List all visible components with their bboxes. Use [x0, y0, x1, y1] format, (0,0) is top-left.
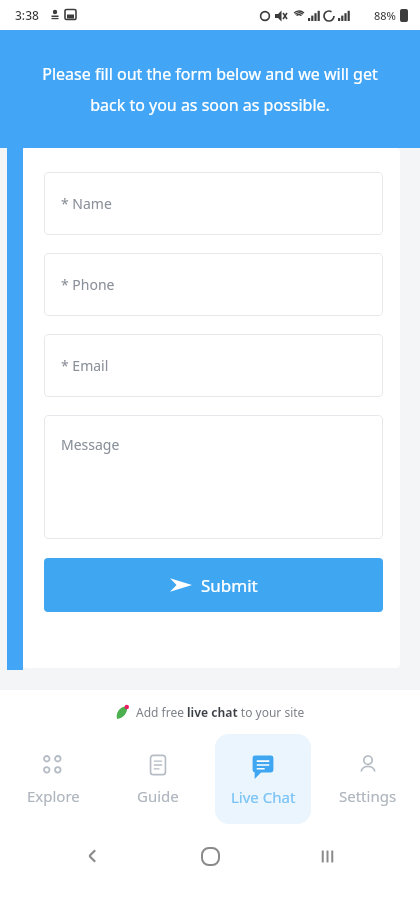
button[interactable]: Recent apps — [303, 832, 351, 880]
staticText: Guide — [137, 786, 179, 806]
staticText: Submit — [201, 574, 258, 597]
button[interactable]: * Phone — [44, 253, 383, 316]
staticText: Message — [61, 435, 120, 454]
button[interactable]: Submit — [44, 558, 383, 612]
button[interactable]: Live chat logo — [0, 690, 420, 734]
staticText: * Name — [61, 194, 112, 213]
staticText: * Email — [61, 356, 109, 375]
button[interactable]: Explore — [5, 734, 101, 824]
staticText: Live Chat — [231, 787, 296, 807]
button[interactable]: Message — [44, 415, 383, 539]
staticText: 3:38 — [15, 7, 39, 23]
staticText: Add free live chat to your site — [136, 704, 305, 720]
button[interactable]: Guide — [110, 734, 206, 824]
button[interactable]: * Email — [44, 334, 383, 397]
button[interactable]: Home — [186, 832, 234, 880]
button[interactable]: * Name — [44, 172, 383, 235]
staticText: * Phone — [61, 275, 115, 294]
button[interactable]: Live Chat — [215, 734, 311, 824]
staticText: Settings — [339, 786, 397, 806]
button[interactable]: Settings — [320, 734, 416, 824]
staticText: Explore — [27, 786, 80, 806]
button[interactable]: Back — [69, 832, 117, 880]
staticText: Please fill out the form below and we wi… — [26, 63, 394, 115]
staticText: 88% — [374, 8, 396, 23]
other: Live chat logo — [115, 705, 129, 719]
